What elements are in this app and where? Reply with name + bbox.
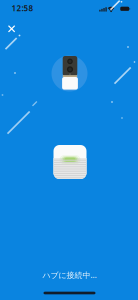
staticText: 12:58 (11, 3, 33, 13)
button[interactable]: Close (1, 18, 22, 40)
staticText: ハブに接続中… (42, 270, 96, 280)
